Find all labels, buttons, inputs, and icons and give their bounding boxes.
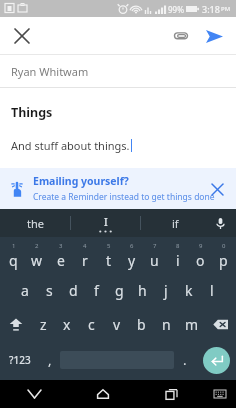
staticText: s — [46, 281, 53, 300]
button[interactable]: a — [13, 273, 37, 307]
button[interactable]: 5 — [97, 239, 120, 273]
staticText: ?123 — [9, 353, 31, 367]
button[interactable]: f — [85, 273, 108, 307]
button[interactable]: b — [129, 307, 154, 341]
button[interactable]: Keyboard — [210, 384, 230, 404]
button[interactable]: 2 — [25, 239, 49, 273]
button[interactable]: z — [31, 307, 55, 341]
staticText: f — [94, 281, 99, 300]
button[interactable]: j — [154, 273, 177, 307]
button[interactable]: 1 — [1, 239, 25, 273]
staticText: 2 — [35, 242, 39, 250]
staticText: if — [172, 216, 179, 231]
staticText: m — [185, 315, 199, 334]
staticText: j — [164, 281, 168, 300]
button[interactable]: m — [179, 307, 204, 341]
staticText: , — [48, 351, 52, 369]
staticText: PM — [221, 5, 231, 13]
staticText: i — [176, 251, 180, 270]
staticText: 7 — [153, 242, 157, 250]
button[interactable]: n — [154, 307, 179, 341]
staticText: Emailing yourself? — [33, 174, 129, 188]
button[interactable]: Voice input — [209, 212, 231, 234]
staticText: b — [137, 315, 146, 334]
button[interactable]: , — [40, 341, 60, 379]
button[interactable]: Back — [0, 380, 68, 408]
staticText: t — [106, 251, 112, 270]
staticText: 5 — [107, 242, 111, 250]
staticText: u — [150, 251, 159, 270]
button[interactable]: Attach file — [166, 21, 196, 51]
staticText: 3:18 — [202, 3, 220, 15]
staticText: 8 — [176, 242, 180, 250]
button[interactable]: Close — [6, 20, 38, 52]
staticText: k — [185, 281, 193, 300]
button[interactable]: 8 — [166, 239, 189, 273]
staticText: o — [196, 251, 205, 270]
button[interactable]: 4 — [73, 239, 97, 273]
staticText: d — [69, 281, 78, 300]
staticText: I — [104, 214, 108, 229]
button[interactable]: Recent apps — [137, 380, 206, 408]
button[interactable]: x — [55, 307, 79, 341]
staticText: 4 — [83, 242, 87, 250]
staticText: v — [113, 315, 121, 334]
staticText: a — [21, 281, 29, 300]
staticText: 1 — [12, 242, 16, 250]
button[interactable]: s — [37, 273, 61, 307]
staticText: the — [27, 216, 44, 231]
staticText: n — [162, 315, 171, 334]
button[interactable]: Home — [68, 380, 137, 408]
staticText: g — [115, 281, 124, 300]
staticText: q — [9, 251, 18, 270]
button[interactable]: 0 — [212, 239, 235, 273]
staticText: 99% — [168, 4, 184, 15]
button[interactable]: c — [79, 307, 104, 341]
button[interactable]: g — [108, 273, 131, 307]
button[interactable]: 7 — [143, 239, 166, 273]
staticText: 3 — [59, 242, 63, 250]
staticText: 0 — [222, 242, 226, 250]
button[interactable]: Things — [0, 88, 236, 168]
button[interactable]: ?123 — [0, 341, 40, 379]
staticText: e — [57, 251, 65, 270]
button[interactable]: Emailing yourself? — [0, 168, 236, 209]
button[interactable]: the — [0, 209, 70, 237]
button[interactable]: d — [61, 273, 85, 307]
button[interactable]: k — [177, 273, 200, 307]
staticText: z — [40, 315, 47, 334]
staticText: . — [183, 351, 187, 369]
button[interactable]: Enter — [203, 347, 230, 374]
button[interactable]: h — [131, 273, 154, 307]
staticText: r — [82, 251, 88, 270]
staticText: Create a Reminder instead to get things … — [33, 191, 215, 203]
button[interactable]: 6 — [120, 239, 143, 273]
staticText: h — [138, 281, 147, 300]
button[interactable]: 3 — [49, 239, 73, 273]
button[interactable]: v — [104, 307, 129, 341]
staticText: 9 — [199, 242, 203, 250]
staticText: p — [219, 251, 228, 270]
staticText: l — [210, 281, 214, 300]
staticText: w — [31, 251, 43, 270]
staticText: c — [88, 315, 95, 334]
button[interactable]: Dismiss — [204, 176, 230, 202]
button[interactable]: I — [71, 214, 140, 229]
button[interactable]: 9 — [189, 239, 212, 273]
button[interactable]: Ryan Whitwam — [0, 55, 236, 87]
button[interactable]: Backspace — [204, 307, 236, 341]
button[interactable]: Shift — [0, 307, 31, 341]
staticText: y — [128, 251, 136, 270]
staticText: Things — [11, 104, 53, 121]
staticText: Ryan Whitwam — [11, 64, 89, 79]
staticText: x — [63, 315, 71, 334]
button[interactable]: if — [141, 209, 210, 237]
button[interactable]: l — [200, 273, 223, 307]
staticText: And stuff about things. — [11, 138, 130, 153]
button[interactable]: Send — [198, 20, 230, 52]
button[interactable]: . — [174, 341, 196, 379]
staticText: 6 — [130, 242, 134, 250]
